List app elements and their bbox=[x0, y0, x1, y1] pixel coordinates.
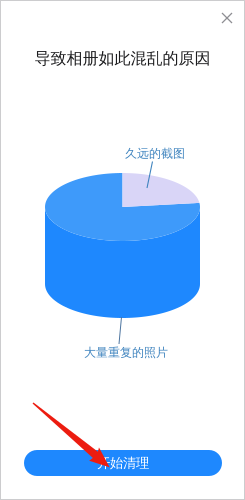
staticText: 久远的截图 bbox=[125, 146, 185, 161]
button[interactable]: Close bbox=[214, 5, 240, 31]
staticText: 大量重复的照片 bbox=[84, 345, 168, 360]
staticText: 开始清理 bbox=[97, 455, 149, 471]
staticText: 导致相册如此混乱的原因 bbox=[34, 49, 210, 68]
button[interactable]: 开始清理 bbox=[24, 450, 222, 476]
